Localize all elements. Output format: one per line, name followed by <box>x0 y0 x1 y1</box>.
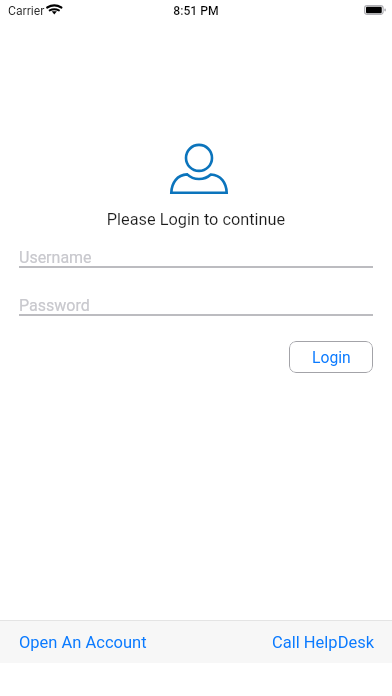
staticText: 8:51 PM <box>0 4 392 18</box>
button[interactable]: Open An Account <box>0 621 166 663</box>
staticText: Please Login to continue <box>0 210 392 229</box>
staticText: Login <box>312 348 351 366</box>
button[interactable]: Password <box>19 290 373 316</box>
button[interactable]: Call HelpDesk <box>254 621 392 663</box>
staticText: Open An Account <box>19 633 147 652</box>
button[interactable]: Login <box>289 341 373 373</box>
staticText: Username <box>19 248 92 267</box>
staticText: Carrier <box>8 4 45 18</box>
staticText: Password <box>19 296 90 315</box>
other: User avatar <box>169 141 233 197</box>
staticText: Call HelpDesk <box>272 633 375 652</box>
button[interactable]: Username <box>19 242 373 268</box>
